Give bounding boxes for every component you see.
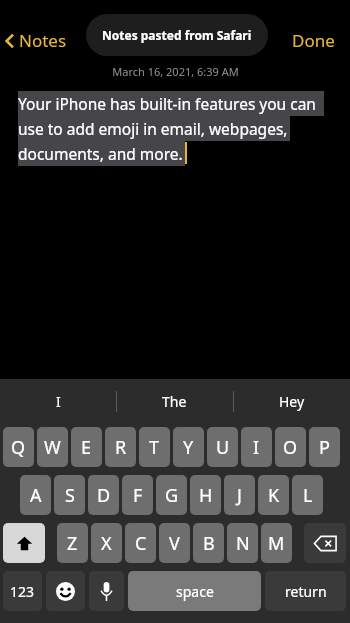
button[interactable]: N — [227, 523, 258, 563]
staticText: Hey — [279, 392, 305, 411]
staticText: E — [81, 435, 92, 460]
button[interactable]: Emoji — [46, 571, 85, 611]
staticText: Notes — [19, 29, 67, 52]
staticText: 123 — [10, 582, 35, 601]
button[interactable]: Dictate — [89, 571, 124, 611]
staticText: R — [115, 435, 127, 460]
staticText: D — [97, 483, 111, 508]
staticText: C — [135, 531, 147, 556]
button[interactable]: Shift — [3, 523, 45, 563]
button[interactable]: The — [116, 379, 233, 424]
button[interactable]: M — [261, 523, 292, 563]
button[interactable]: Y — [173, 427, 204, 467]
staticText: Notes pasted from Safari — [102, 27, 252, 43]
button[interactable]: Backspace — [304, 523, 346, 563]
button[interactable]: Notes — [4, 24, 67, 56]
staticText: Done — [292, 29, 335, 52]
staticText: P — [319, 435, 330, 460]
staticText: I — [253, 435, 260, 460]
staticText: The — [162, 392, 187, 411]
button[interactable]: Notes pasted from Safari — [86, 14, 268, 56]
button[interactable]: S — [54, 475, 85, 515]
button[interactable]: I — [241, 427, 272, 467]
staticText: G — [165, 483, 179, 508]
button[interactable]: Z — [57, 523, 88, 563]
button[interactable]: B — [193, 523, 224, 563]
button[interactable]: F — [122, 475, 153, 515]
button[interactable]: L — [292, 475, 323, 515]
staticText: U — [216, 435, 230, 460]
button[interactable]: C — [125, 523, 156, 563]
button[interactable]: D — [88, 475, 119, 515]
staticText: Z — [67, 531, 78, 556]
staticText: L — [303, 483, 313, 508]
button[interactable]: P — [309, 427, 340, 467]
staticText: S — [65, 483, 75, 508]
staticText: K — [268, 483, 280, 508]
staticText: J — [237, 483, 242, 508]
button[interactable]: R — [105, 427, 136, 467]
button[interactable]: U — [207, 427, 238, 467]
staticText: return — [285, 582, 327, 601]
button[interactable]: Q — [3, 427, 34, 467]
button[interactable]: X — [91, 523, 122, 563]
staticText: documents, and more. — [18, 143, 183, 164]
staticText: N — [236, 531, 250, 556]
staticText: A — [30, 483, 42, 508]
button[interactable]: Done — [292, 24, 335, 56]
staticText: T — [149, 435, 160, 460]
staticText: O — [283, 435, 298, 460]
button[interactable]: V — [159, 523, 190, 563]
staticText: space — [176, 582, 214, 601]
staticText: Q — [11, 435, 26, 460]
button[interactable]: E — [71, 427, 102, 467]
staticText: W — [44, 435, 61, 460]
button[interactable]: T — [139, 427, 170, 467]
button[interactable]: G — [156, 475, 187, 515]
button[interactable]: I — [0, 379, 116, 424]
button[interactable]: H — [190, 475, 221, 515]
staticText: Your iPhone has built-in features you ca… — [18, 93, 316, 114]
staticText: V — [169, 531, 180, 556]
button[interactable]: A — [20, 475, 51, 515]
button[interactable]: Hey — [233, 379, 350, 424]
button[interactable]: K — [258, 475, 289, 515]
button[interactable]: O — [275, 427, 306, 467]
button[interactable]: W — [37, 427, 68, 467]
button[interactable]: space — [128, 571, 261, 611]
button[interactable]: 123 — [3, 571, 42, 611]
button[interactable]: J — [224, 475, 255, 515]
staticText: F — [133, 483, 143, 508]
staticText: Y — [183, 435, 194, 460]
staticText: B — [203, 531, 215, 556]
staticText: X — [101, 531, 112, 556]
staticText: H — [199, 483, 213, 508]
staticText: March 16, 2021, 6:39 AM — [112, 64, 239, 79]
staticText: I — [56, 392, 61, 411]
staticText: use to add emoji in email, webpages, — [18, 118, 288, 139]
button[interactable]: return — [265, 571, 346, 611]
staticText: M — [268, 531, 285, 556]
